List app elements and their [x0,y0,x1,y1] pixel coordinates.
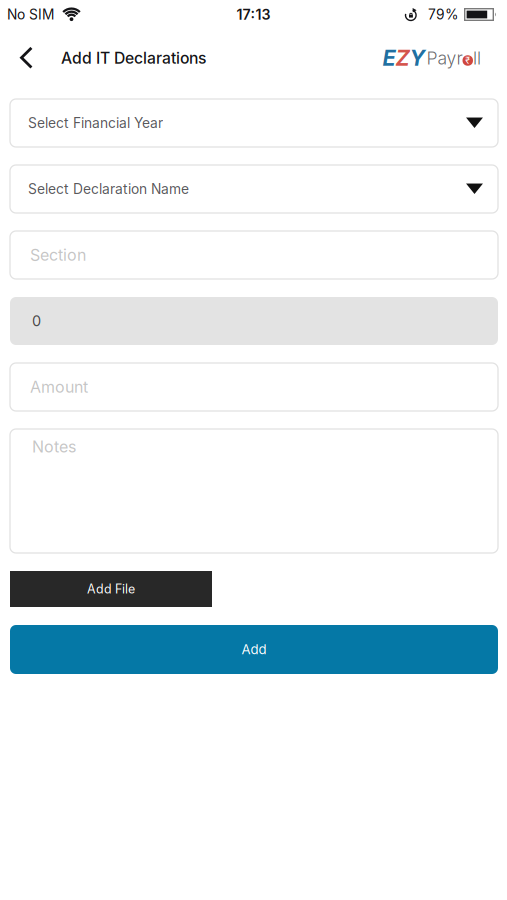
button[interactable]: Add [10,625,498,674]
button[interactable]: Select Declaration Name [10,165,498,213]
staticText: Payr [426,47,462,69]
staticText: 17:13 [236,6,270,23]
button[interactable]: Notes [10,429,498,553]
button[interactable]: Select Financial Year [10,99,498,147]
staticText: 79% [428,6,459,23]
staticText: Y [409,45,425,71]
staticText: Notes [32,437,76,456]
staticText: ll [473,47,481,69]
staticText: ₹ [465,55,470,66]
staticText: Section [30,245,86,265]
button[interactable]: Section [10,231,498,279]
staticText: Z [395,45,409,71]
staticText: Add IT Declarations [61,48,206,67]
button[interactable]: Back [0,46,33,69]
staticText: No SIM [7,6,54,23]
staticText: Add [241,641,266,657]
button[interactable]: Add File [10,571,212,607]
staticText: Select Declaration Name [28,181,189,197]
staticText: Amount [30,377,88,397]
staticText: E [382,45,395,71]
staticText: 0 [32,312,41,330]
button[interactable]: Amount [10,363,498,411]
staticText: Add File [87,581,135,596]
staticText: Select Financial Year [28,115,163,131]
